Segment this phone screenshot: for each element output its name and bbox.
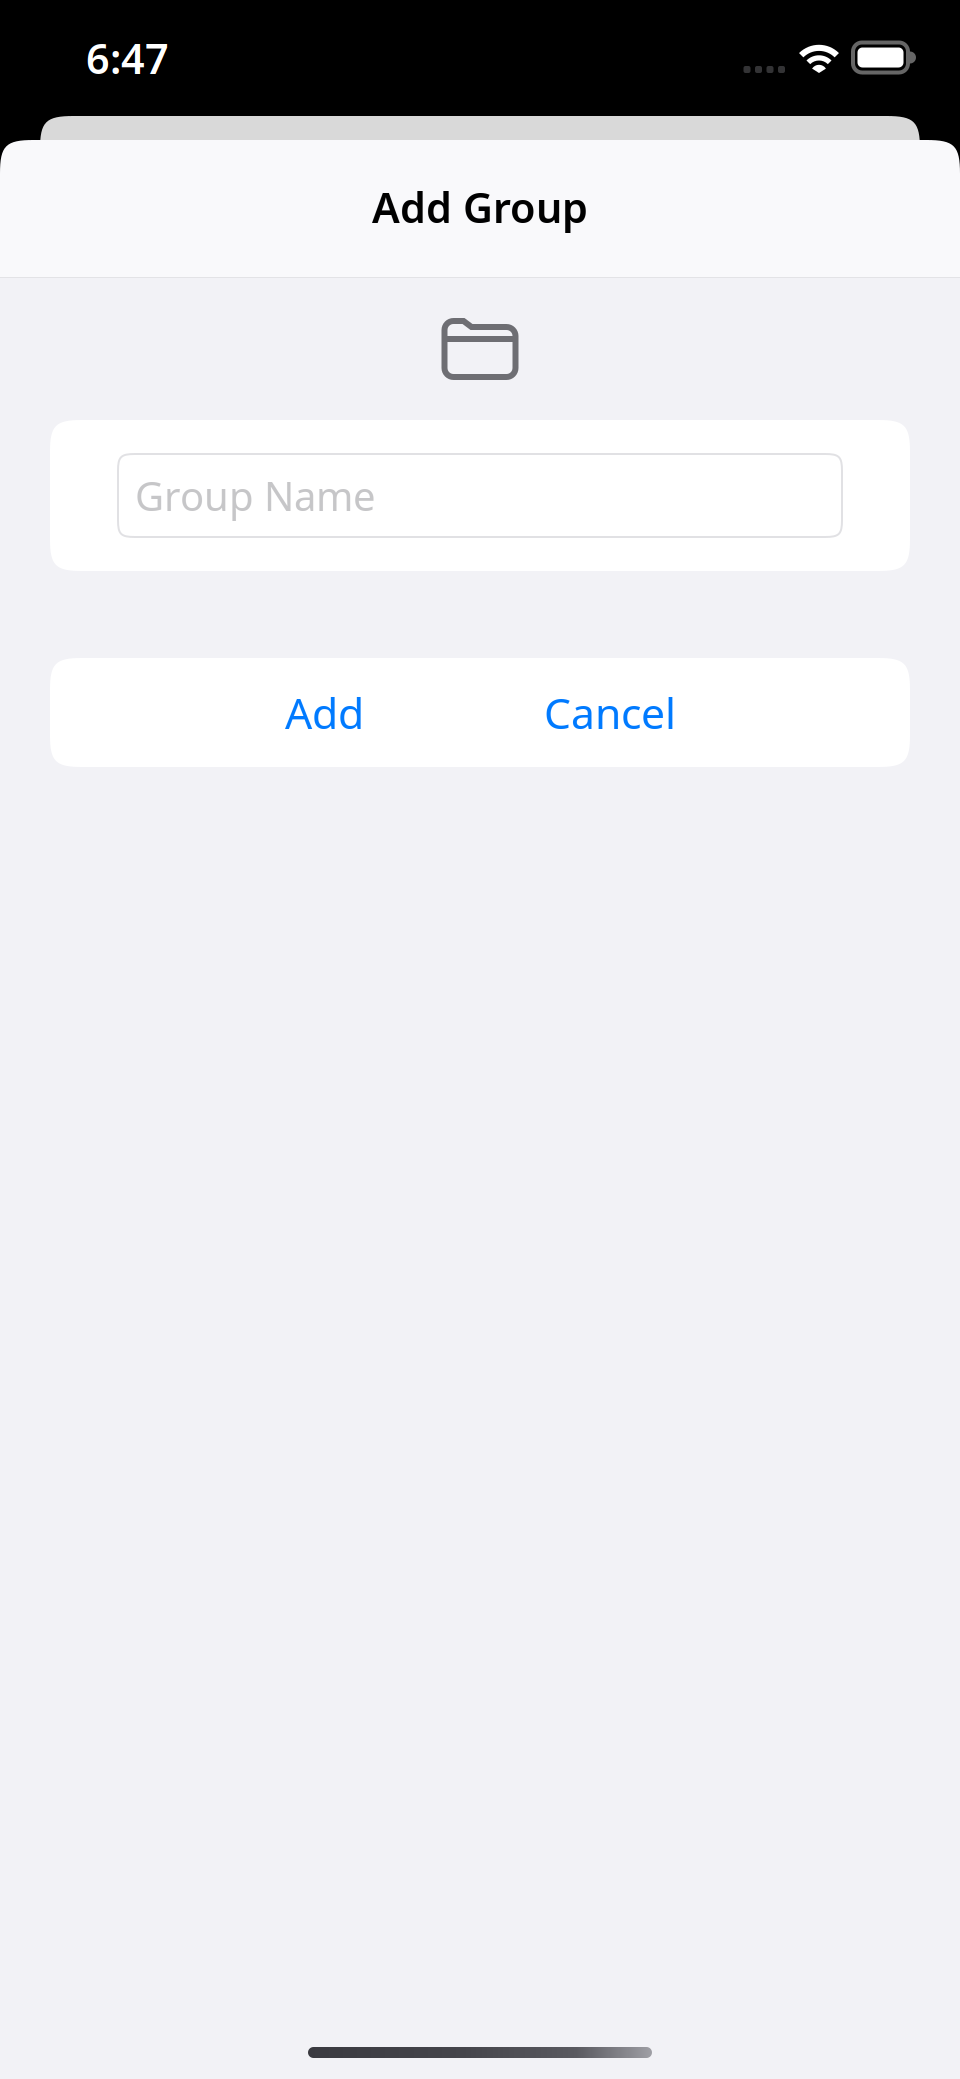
staticText: Group Name bbox=[135, 469, 376, 522]
staticText: Add bbox=[285, 684, 364, 741]
staticText: 6:47 bbox=[86, 31, 169, 85]
staticText: Add Group bbox=[372, 180, 588, 234]
button[interactable]: Add bbox=[50, 658, 480, 767]
button[interactable]: Cancel bbox=[480, 658, 910, 767]
staticText: Cancel bbox=[544, 684, 676, 741]
